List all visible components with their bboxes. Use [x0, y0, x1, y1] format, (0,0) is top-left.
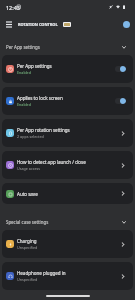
- staticText: Auto save: [17, 191, 38, 197]
- button[interactable]: Per App settings: [0, 34, 135, 53]
- button[interactable]: Per App rotation settings: [2, 119, 133, 147]
- button[interactable]: How to detect app launch / close: [2, 151, 133, 179]
- button[interactable]: Special case settings: [0, 206, 135, 228]
- staticText: Unspecified: [17, 277, 38, 282]
- staticText: 12:43: [6, 4, 20, 11]
- staticText: Per App settings: [6, 44, 40, 50]
- staticText: Per App settings: [17, 63, 52, 69]
- button[interactable]: Charging: [2, 230, 133, 258]
- staticText: Usage access: [17, 166, 41, 171]
- staticText: Enabled: [17, 102, 31, 107]
- staticText: ROTATION CONTROL: [18, 22, 58, 27]
- staticText: Enabled: [17, 70, 31, 75]
- staticText: How to detect app launch / close: [17, 159, 86, 165]
- staticText: Special case settings: [6, 219, 49, 225]
- staticText: Headphone plugged in: [17, 270, 66, 276]
- button[interactable]: Auto save: [2, 183, 133, 204]
- staticText: Applies to lock screen: [17, 95, 63, 101]
- staticText: Per App rotation settings: [17, 127, 70, 133]
- button[interactable]: Headphone plugged in: [2, 262, 133, 290]
- button[interactable]: Rotation state toggle: [119, 17, 133, 31]
- staticText: Unspecified: [17, 245, 38, 250]
- button[interactable]: Per App settings: [2, 55, 133, 83]
- staticText: Charging: [17, 238, 37, 244]
- button[interactable]: Applies to lock screen: [2, 87, 133, 115]
- staticText: 2 apps selected: [17, 134, 44, 139]
- button[interactable]: Open navigation menu: [0, 14, 17, 34]
